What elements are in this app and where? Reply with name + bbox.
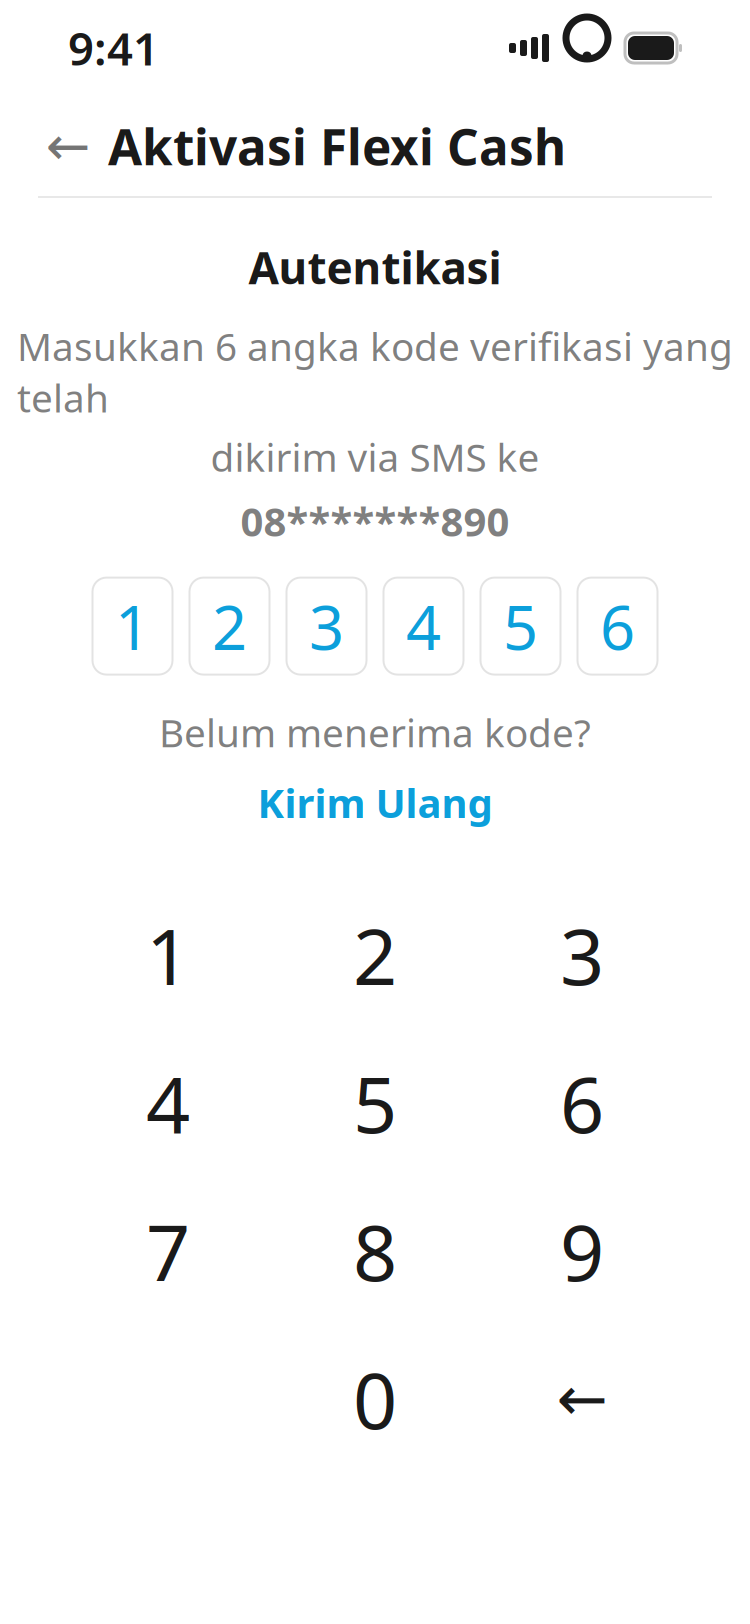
staticText: Autentikasi — [248, 238, 501, 296]
staticText: 1 — [146, 904, 190, 1006]
staticText: 6 — [600, 585, 635, 667]
staticText: 9:41 — [68, 18, 159, 78]
staticText: 5 — [503, 585, 538, 667]
staticText: Belum menerima kode? — [159, 707, 591, 758]
staticText: 3 — [560, 904, 604, 1006]
button[interactable]: Backspace — [478, 1325, 685, 1473]
staticText: Masukkan 6 angka kode verifikasi yang te… — [17, 320, 733, 423]
button[interactable]: 7 — [64, 1177, 271, 1325]
staticText: 4 — [406, 585, 441, 667]
staticText: 6 — [560, 1052, 604, 1154]
staticText: ← — [45, 116, 90, 176]
staticText: ← — [556, 1364, 607, 1434]
staticText: 08*******890 — [240, 494, 509, 548]
staticText: 8 — [353, 1200, 397, 1302]
button[interactable]: 5 — [271, 1029, 478, 1177]
button[interactable]: 9 — [478, 1177, 685, 1325]
button[interactable]: 2 — [271, 881, 478, 1029]
staticText: 4 — [146, 1052, 190, 1154]
staticText: 3 — [309, 585, 344, 667]
staticText: 2 — [212, 585, 247, 667]
staticText: 2 — [353, 904, 397, 1006]
staticText: 9 — [560, 1200, 604, 1302]
button[interactable]: 1 — [64, 881, 271, 1029]
staticText: Kirim Ulang — [257, 776, 492, 829]
button[interactable]: Kirim Ulang — [237, 768, 512, 837]
staticText: dikirim via SMS ke — [210, 431, 539, 482]
button[interactable]: 8 — [271, 1177, 478, 1325]
staticText: 7 — [146, 1200, 190, 1302]
staticText: 0 — [353, 1348, 397, 1450]
button[interactable]: Back — [40, 118, 96, 174]
button[interactable]: 4 — [64, 1029, 271, 1177]
button[interactable]: 0 — [271, 1325, 478, 1473]
button[interactable]: 3 — [478, 881, 685, 1029]
staticText: 1 — [115, 585, 150, 667]
staticText: 5 — [353, 1052, 397, 1154]
staticText: Aktivasi Flexi Cash — [108, 113, 566, 179]
button[interactable]: 6 — [478, 1029, 685, 1177]
